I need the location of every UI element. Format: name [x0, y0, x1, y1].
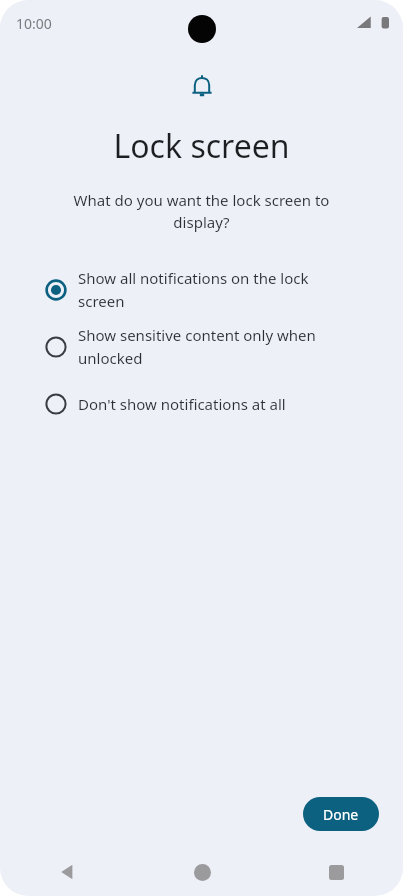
staticText: Done	[323, 805, 359, 824]
staticText: Show sensitive content only when unlocke…	[78, 325, 357, 368]
staticText: 10:00	[16, 14, 52, 33]
button[interactable]: Home	[135, 848, 269, 896]
button[interactable]: Done	[303, 797, 379, 831]
staticText: Don't show notifications at all	[78, 394, 286, 414]
button[interactable]: Show all notifications on the lock scree…	[0, 261, 403, 318]
staticText: Show all notifications on the lock scree…	[78, 268, 357, 311]
button[interactable]: Recent apps	[269, 848, 403, 896]
button[interactable]: Back	[0, 848, 135, 896]
staticText: Lock screen	[113, 124, 290, 168]
button[interactable]: Don't show notifications at all	[0, 375, 403, 432]
other: Notifications	[190, 74, 214, 100]
button[interactable]: Show sensitive content only when unlocke…	[0, 318, 403, 375]
staticText: What do you want the lock screen to disp…	[52, 190, 351, 233]
